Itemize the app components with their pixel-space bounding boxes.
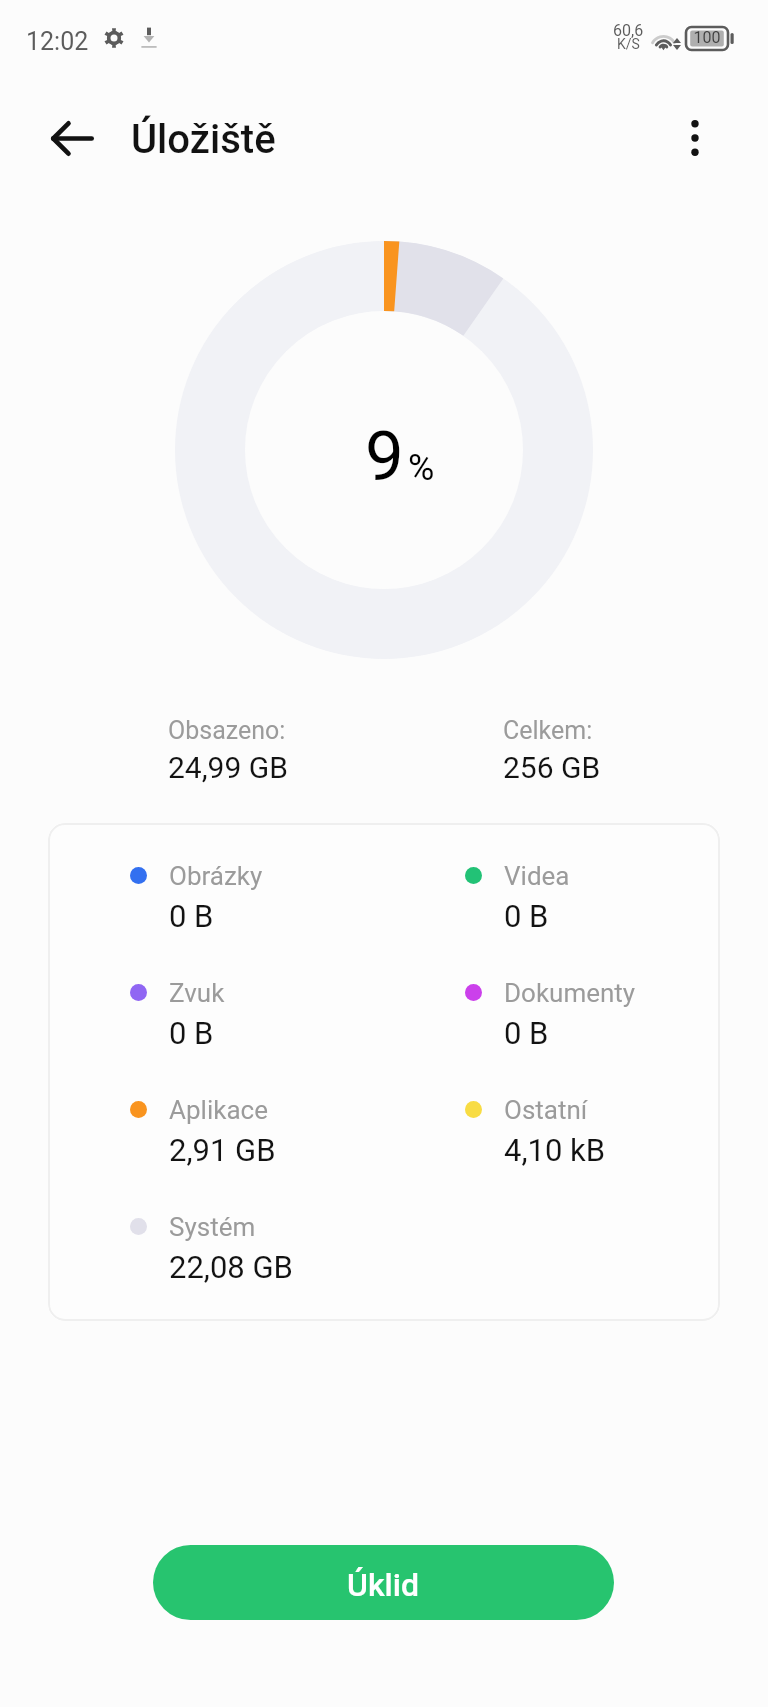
button[interactable]: Dokumenty — [465, 978, 720, 1058]
staticText: 0 B — [169, 898, 214, 934]
staticText: Videa — [504, 861, 570, 891]
staticText: 0 B — [504, 1015, 549, 1051]
button[interactable]: Aplikace — [130, 1095, 430, 1175]
staticText: Aplikace — [169, 1095, 268, 1125]
staticText: Obrázky — [169, 861, 263, 891]
staticText: 22,08 GB — [169, 1249, 293, 1285]
staticText: K/S — [617, 36, 640, 52]
staticText: Systém — [169, 1212, 256, 1242]
staticText: Ostatní — [504, 1095, 588, 1125]
staticText: 24,99 GB — [168, 750, 288, 785]
button[interactable]: Ostatní — [465, 1095, 720, 1175]
button[interactable]: Videa — [465, 861, 720, 941]
staticText: 2,91 GB — [169, 1132, 276, 1168]
staticText: 12:02 — [26, 27, 89, 56]
staticText: Dokumenty — [504, 978, 636, 1008]
staticText: 60,6 — [613, 21, 644, 40]
staticText: Úklid — [347, 1566, 420, 1604]
staticText: 100 — [686, 28, 728, 47]
staticText: Obsazeno: — [168, 716, 286, 745]
button[interactable]: Úklid — [153, 1545, 614, 1620]
staticText: 0 B — [169, 1015, 214, 1051]
staticText: Úložiště — [131, 116, 276, 163]
staticText: 256 GB — [503, 750, 601, 785]
staticText: 0 B — [504, 898, 549, 934]
button[interactable]: Obrázky — [130, 861, 430, 941]
button[interactable]: Systém — [130, 1212, 430, 1292]
button[interactable]: Back — [36, 102, 108, 174]
staticText: 9 — [365, 416, 404, 497]
staticText: % — [408, 447, 435, 489]
staticText: Zvuk — [169, 978, 225, 1008]
staticText: 4,10 kB — [504, 1132, 606, 1168]
button[interactable]: More options — [659, 102, 731, 174]
staticText: Celkem: — [503, 716, 593, 745]
button[interactable]: Zvuk — [130, 978, 430, 1058]
